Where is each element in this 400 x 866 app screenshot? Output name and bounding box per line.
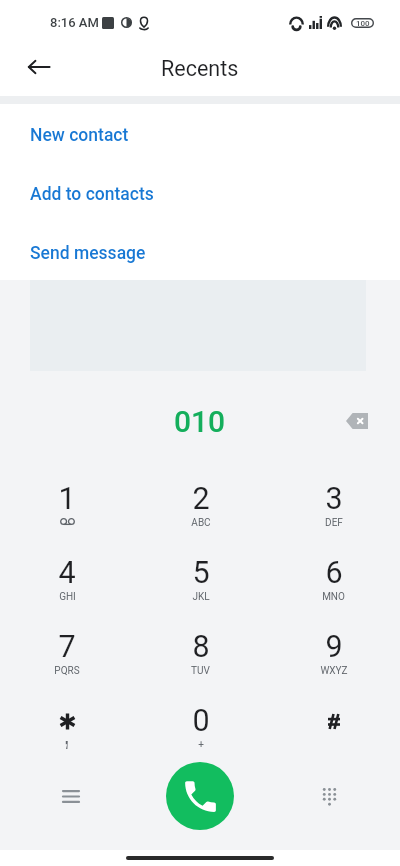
staticText: TUV (191, 665, 210, 677)
button[interactable]: Back (18, 46, 60, 88)
staticText: 4 (58, 555, 76, 591)
button[interactable]: 7 (0, 629, 134, 703)
staticText: 0 (192, 703, 210, 739)
staticText: 100 (356, 19, 370, 28)
staticText: JKL (192, 591, 210, 603)
staticText: Add to contacts (30, 184, 154, 205)
button[interactable]: Call log (50, 775, 92, 817)
staticText: + (198, 739, 204, 751)
staticText: GHI (59, 591, 76, 603)
button[interactable]: 5 (134, 555, 267, 629)
button[interactable]: 6 (267, 555, 400, 629)
button[interactable]: Dialpad (308, 775, 350, 817)
button[interactable]: 4 (0, 555, 134, 629)
button[interactable]: 9 (267, 629, 400, 703)
button[interactable]: Send message (0, 224, 400, 283)
button[interactable] (0, 703, 134, 777)
button[interactable]: Call (166, 762, 234, 830)
staticText: PQRS (54, 665, 80, 677)
staticText: Recents (161, 56, 239, 81)
staticText: 8:16 AM (50, 15, 99, 30)
staticText: DEF (325, 517, 343, 529)
button[interactable]: 3 (267, 481, 400, 555)
staticText: 9 (325, 629, 343, 665)
staticText: 2 (192, 481, 210, 517)
button[interactable]: 8 (134, 629, 267, 703)
button[interactable] (267, 703, 400, 777)
staticText: ABC (191, 517, 211, 529)
staticText: 5 (192, 555, 210, 591)
staticText: MNO (322, 591, 345, 603)
button[interactable]: 0 (134, 703, 267, 777)
button[interactable]: Add to contacts (0, 165, 400, 224)
button[interactable]: 2 (134, 481, 267, 555)
button[interactable]: 1 (0, 481, 134, 555)
staticText: 010 (174, 404, 226, 439)
button[interactable]: Backspace (336, 400, 378, 442)
staticText: Send message (30, 243, 146, 264)
button[interactable]: New contact (0, 106, 400, 165)
staticText: 1 (58, 481, 76, 517)
staticText: 3 (325, 481, 343, 517)
staticText: WXYZ (320, 665, 348, 677)
staticText: New contact (30, 125, 129, 146)
staticText: 8 (192, 629, 210, 665)
staticText: 6 (325, 555, 343, 591)
staticText: 7 (58, 629, 76, 665)
